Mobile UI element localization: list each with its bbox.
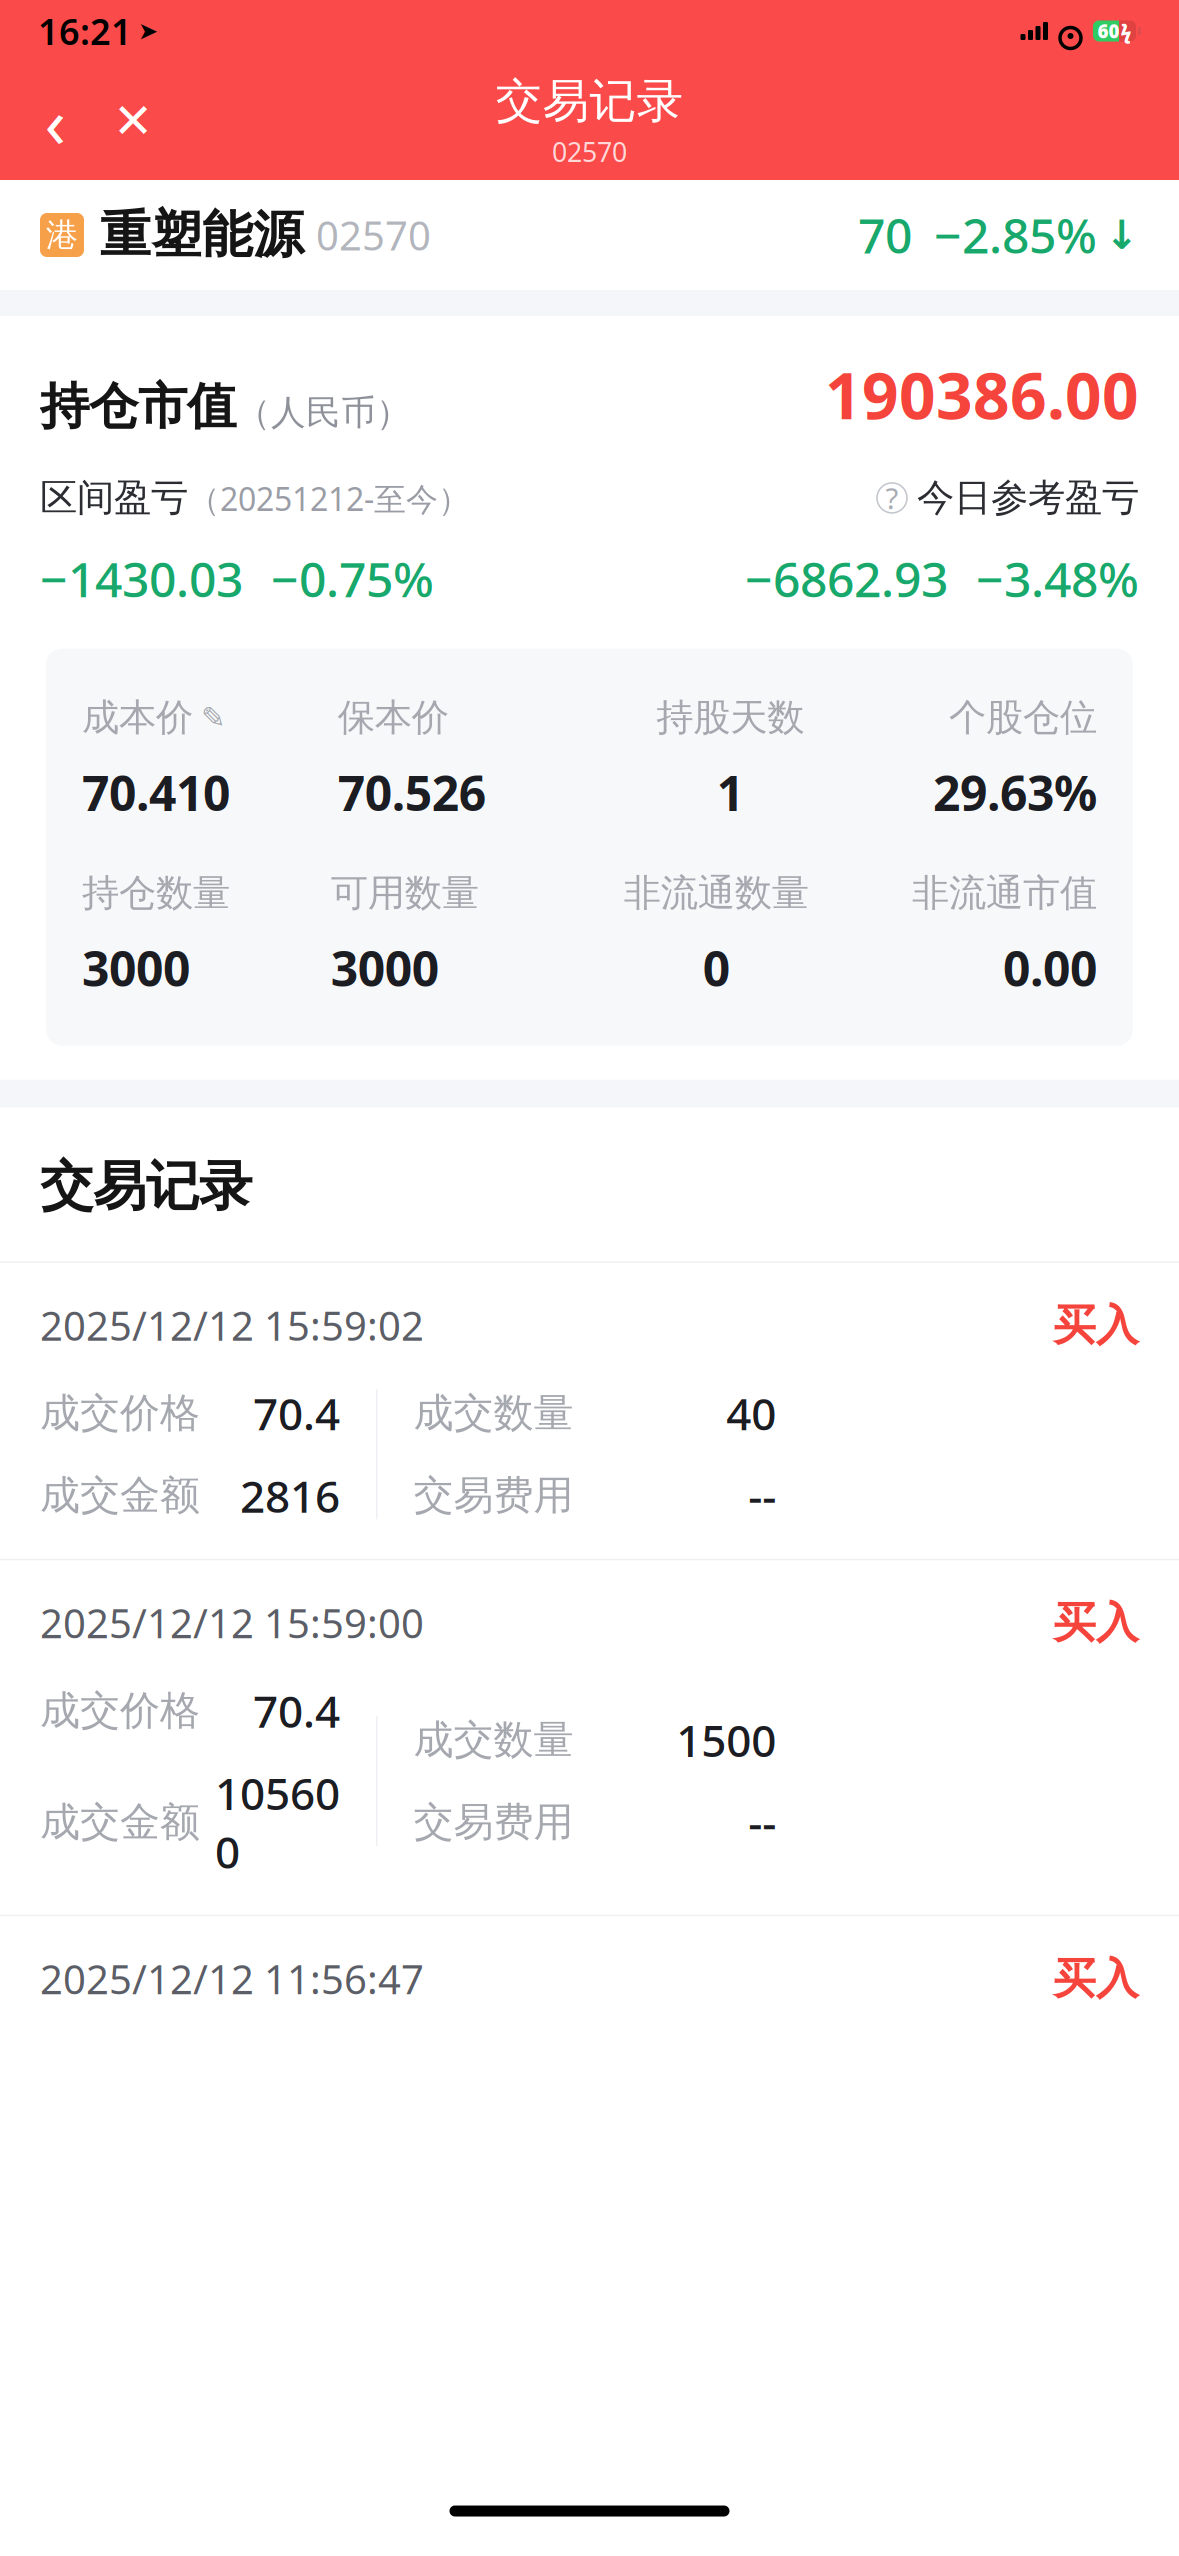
button[interactable]: 2025/12/12 11:56:47	[0, 1915, 1179, 2065]
staticText: −3.48%	[976, 547, 1139, 610]
staticText: 持仓数量	[82, 870, 230, 916]
staticText: 持仓市值	[40, 376, 236, 437]
staticText: 70.4	[253, 1681, 340, 1740]
staticText: 105600	[215, 1764, 340, 1881]
staticText: 2025/12/12 11:56:47	[40, 1952, 424, 2005]
staticText: ?	[885, 478, 898, 517]
staticText: 买入	[1053, 1597, 1139, 1649]
staticText: 2816	[240, 1466, 340, 1525]
staticText: −2.85%	[934, 203, 1097, 267]
staticText: 交易费用	[413, 1471, 573, 1520]
staticText: 1	[717, 760, 744, 824]
staticText: 1500	[676, 1711, 776, 1769]
staticText: 40	[726, 1384, 776, 1442]
staticText: 29.63%	[933, 760, 1097, 824]
staticText: 70.526	[338, 760, 486, 824]
staticText: 3000	[82, 936, 190, 1000]
staticText: 交易费用	[413, 1798, 573, 1847]
staticText: 持股天数	[656, 695, 804, 740]
staticText: 60	[1097, 19, 1119, 43]
staticText: --	[748, 1793, 776, 1851]
button[interactable]: Back	[16, 82, 94, 160]
staticText: 今日参考盈亏	[917, 475, 1139, 521]
staticText: ‹	[44, 75, 65, 167]
staticText: 港	[46, 215, 78, 255]
staticText: 个股仓位	[949, 695, 1097, 740]
staticText: 190386.00	[825, 352, 1139, 437]
staticText: 非流通数量	[624, 870, 809, 916]
staticText: 成交金额	[40, 1471, 200, 1520]
staticText: 16:21	[38, 7, 132, 55]
button[interactable]: 港	[0, 180, 1179, 290]
staticText: 成本价	[82, 695, 193, 740]
staticText: --	[748, 1466, 776, 1525]
button[interactable]: 2025/12/12 15:59:02	[0, 1261, 1179, 1559]
staticText: ➤	[138, 17, 158, 45]
staticText: 可用数量	[331, 870, 479, 916]
staticText: 3000	[331, 936, 439, 1000]
staticText: 02570	[316, 208, 431, 261]
staticText: 2025/12/12 15:59:00	[40, 1596, 424, 1649]
staticText: 成交价格	[40, 1686, 200, 1735]
staticText: 0	[703, 936, 730, 1000]
staticText: 买入	[1053, 1299, 1139, 1351]
staticText: 70.4	[253, 1384, 340, 1442]
staticText: 交易记录	[40, 1154, 252, 1219]
staticText: （人民币）	[236, 391, 411, 434]
staticText: −1430.03	[40, 547, 243, 610]
staticText: ✕	[113, 94, 153, 148]
staticText: 重塑能源	[100, 204, 304, 266]
staticText: ✎	[201, 701, 226, 734]
staticText: 买入	[1053, 1952, 1139, 2005]
staticText: 70	[858, 203, 912, 267]
staticText: 02570	[552, 134, 627, 169]
staticText: 保本价	[338, 695, 449, 740]
staticText: （20251212-至今）	[188, 477, 470, 520]
staticText: 成交数量	[413, 1715, 573, 1764]
staticText: 成交价格	[40, 1389, 200, 1438]
staticText: 70.410	[82, 760, 230, 824]
staticText: 交易记录	[495, 73, 683, 130]
staticText: 成交数量	[413, 1389, 573, 1438]
staticText: 0.00	[1003, 936, 1097, 1000]
button[interactable]: Close	[94, 82, 172, 160]
staticText: 区间盈亏	[40, 475, 188, 521]
staticText: 2025/12/12 15:59:02	[40, 1299, 424, 1352]
button[interactable]: ?	[877, 475, 1139, 521]
staticText: ϟ	[1120, 18, 1131, 44]
staticText: 成交金额	[40, 1798, 200, 1847]
staticText: −0.75%	[271, 547, 434, 610]
staticText: −6862.93	[745, 547, 948, 610]
staticText: 非流通市值	[912, 870, 1097, 916]
staticText: ↓	[1105, 212, 1139, 258]
button[interactable]: 2025/12/12 15:59:00	[0, 1559, 1179, 1915]
